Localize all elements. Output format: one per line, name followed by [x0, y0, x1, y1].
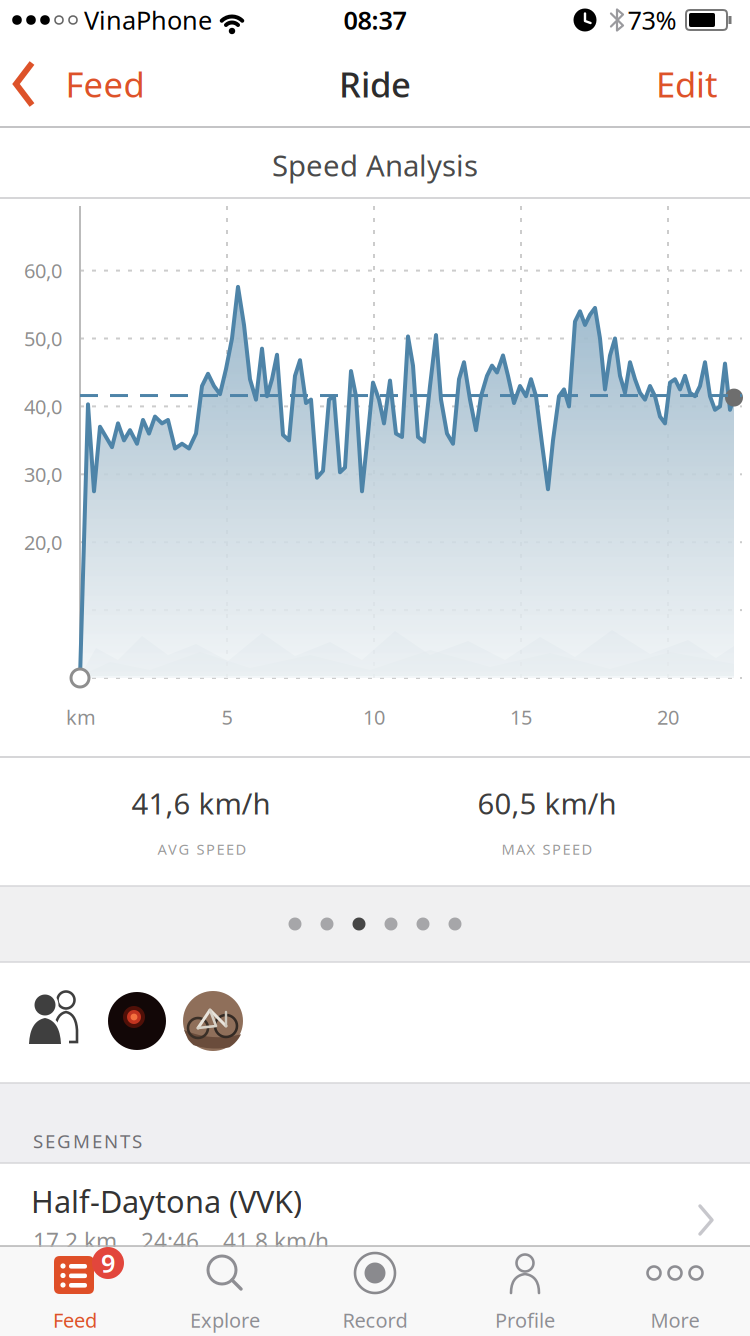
staticText: Feed — [53, 1307, 97, 1333]
staticText: Feed — [65, 61, 144, 107]
staticText: 10 — [363, 704, 385, 730]
staticText: 73% — [627, 3, 676, 37]
button[interactable]: Photo — [107, 991, 167, 1051]
staticText: 20,0 — [24, 529, 62, 555]
staticText: Speed Analysis — [272, 145, 478, 184]
staticText: SEGMENTS — [33, 1129, 142, 1153]
staticText: MAX SPEED — [501, 839, 592, 859]
button[interactable]: 9 — [0, 1246, 150, 1336]
staticText: 20 — [657, 704, 679, 730]
staticText: 5 — [221, 704, 232, 730]
staticText: 50,0 — [24, 325, 62, 352]
button[interactable]: Edit — [632, 40, 742, 128]
staticText: 15 — [510, 704, 532, 730]
staticText: Profile — [495, 1307, 555, 1333]
staticText: 30,0 — [24, 461, 62, 488]
staticText: Record — [342, 1307, 407, 1333]
staticText: 60,5 km/h — [477, 783, 616, 822]
button[interactable]: Profile — [450, 1246, 600, 1336]
button[interactable]: Back to Feed — [5, 40, 155, 128]
staticText: 60,0 — [24, 257, 62, 284]
button[interactable]: Explore — [150, 1246, 300, 1336]
button[interactable]: Half-Daytona (VVK) — [30, 1163, 720, 1246]
button[interactable]: Athletes — [25, 990, 89, 1054]
button[interactable]: Photo — [182, 990, 244, 1052]
staticText: 17,2 km 24:46 41,8 km/h — [33, 1226, 329, 1256]
staticText: 40,0 — [24, 393, 62, 420]
staticText: Ride — [339, 61, 411, 107]
staticText: Edit — [656, 61, 718, 107]
staticText: 41,6 km/h — [131, 783, 270, 822]
staticText: 9 — [101, 1246, 115, 1280]
staticText: More — [650, 1307, 699, 1333]
staticText: VinaPhone — [84, 3, 212, 37]
staticText: Explore — [190, 1307, 260, 1333]
staticText: 08:37 — [343, 3, 406, 37]
staticText: km — [66, 704, 96, 730]
staticText: Half-Daytona (VVK) — [31, 1181, 302, 1221]
button[interactable]: More — [600, 1246, 750, 1336]
button[interactable]: Record — [300, 1246, 450, 1336]
staticText: AVG SPEED — [157, 839, 246, 859]
